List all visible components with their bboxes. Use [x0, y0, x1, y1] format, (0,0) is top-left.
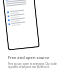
button[interactable] [5, 11, 36, 19]
button[interactable] [6, 19, 36, 26]
button[interactable] [6, 15, 36, 23]
staticText: Free to use, open to everyone. Our code … [8, 62, 58, 68]
staticText: Free and open source [8, 55, 50, 60]
button[interactable] [5, 7, 35, 15]
